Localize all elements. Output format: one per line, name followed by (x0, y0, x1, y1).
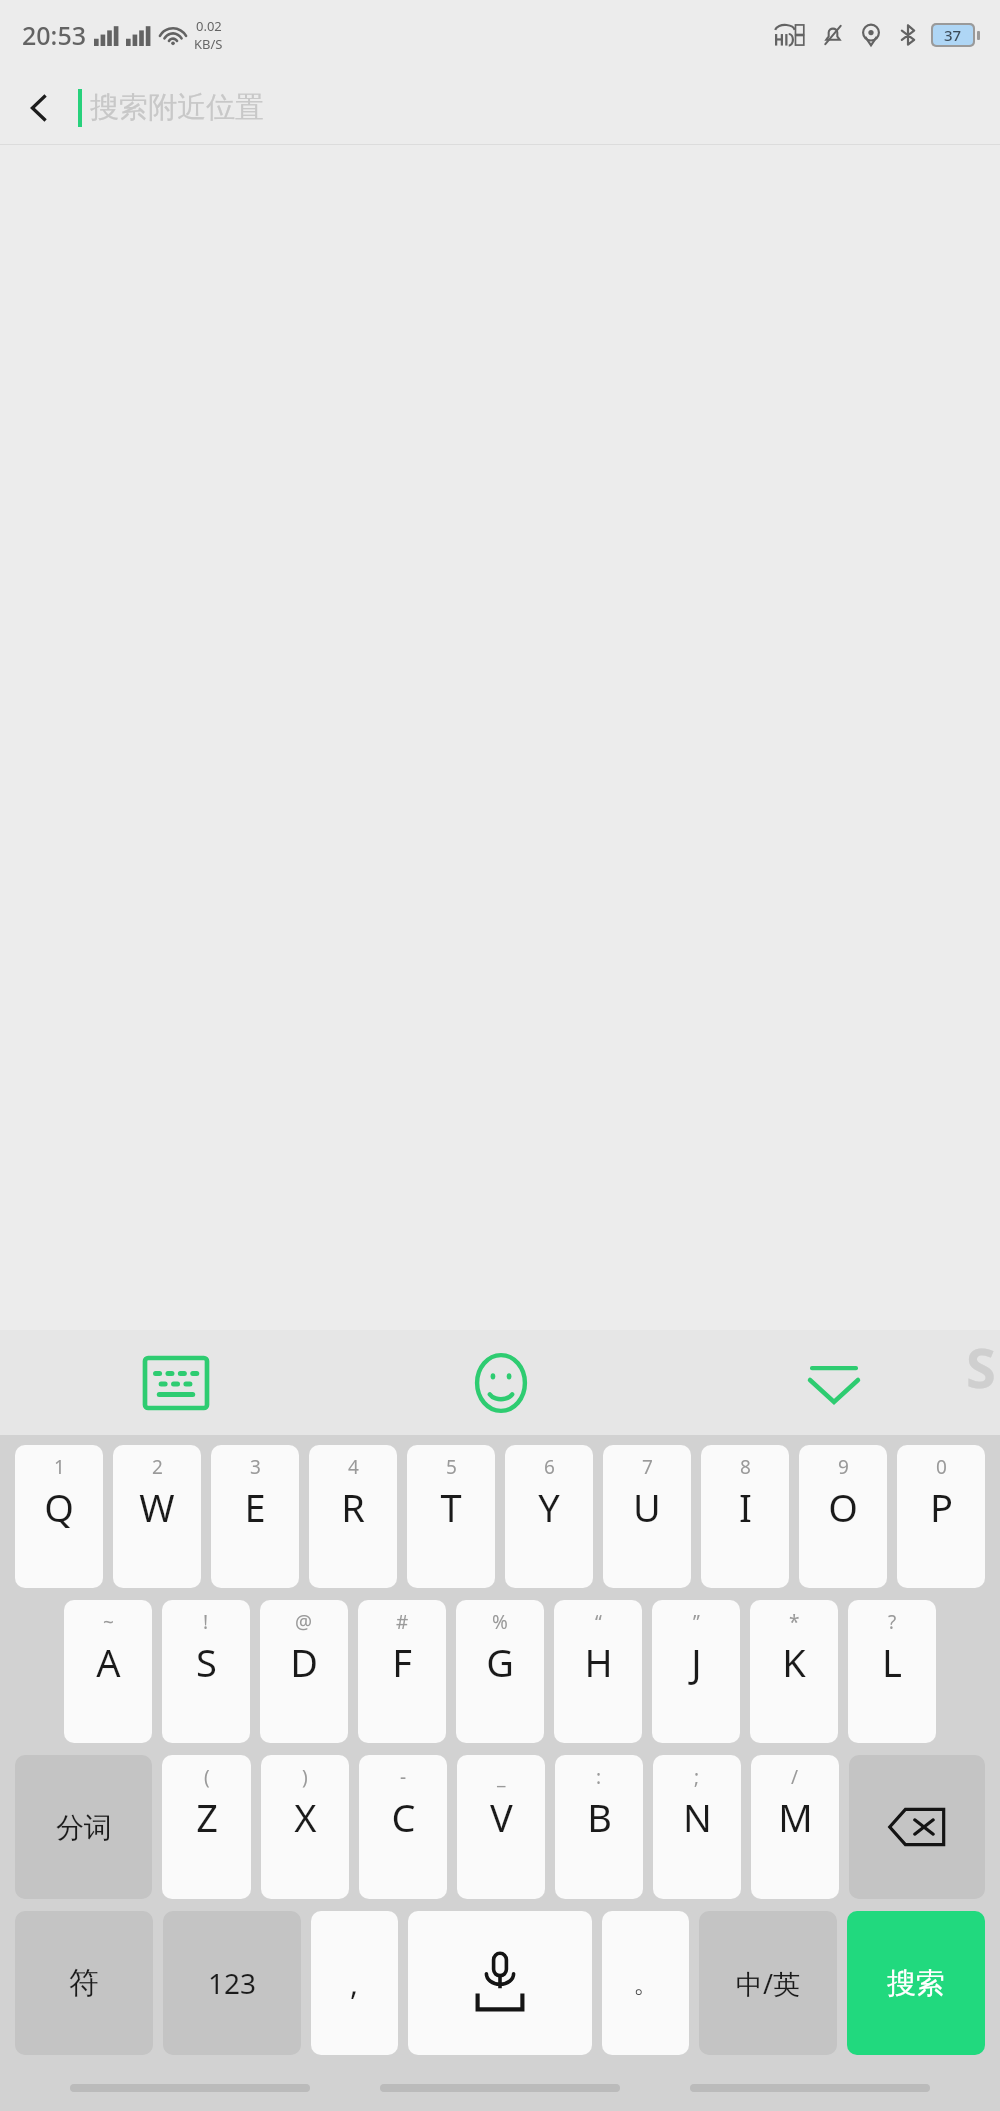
staticText: I (739, 1481, 752, 1533)
button[interactable]: ( (162, 1755, 251, 1899)
staticText: ; (694, 1764, 700, 1790)
staticText: L (882, 1636, 902, 1688)
button[interactable]: ? (848, 1600, 936, 1743)
staticText: 6 (544, 1454, 555, 1480)
staticText: % (492, 1609, 508, 1635)
staticText: S (966, 1330, 996, 1404)
staticText: Q (44, 1481, 74, 1533)
button[interactable]: 123 (163, 1911, 301, 2055)
button[interactable]: Backspace (849, 1755, 985, 1899)
staticText: / (791, 1764, 799, 1790)
button[interactable]: ; (653, 1755, 741, 1899)
button[interactable]: Hide keyboard (667, 1330, 1000, 1435)
button[interactable]: 4 (309, 1445, 397, 1588)
staticText: 3 (250, 1454, 261, 1480)
staticText: F (392, 1636, 412, 1688)
staticText: X (294, 1791, 317, 1843)
staticText: 搜索 (887, 1965, 945, 2002)
staticText: U (633, 1481, 661, 1533)
staticText: B (587, 1791, 612, 1843)
staticText: Y (538, 1481, 560, 1533)
staticText: T (440, 1481, 462, 1533)
staticText: _ (497, 1764, 506, 1790)
staticText: @ (295, 1609, 313, 1635)
button[interactable]: , (311, 1911, 398, 2055)
staticText: J (691, 1636, 702, 1688)
staticText: R (341, 1481, 365, 1533)
button[interactable]: 搜索 (847, 1911, 985, 2055)
staticText: 中/英 (736, 1965, 801, 2002)
button[interactable]: 1 (15, 1445, 103, 1588)
button[interactable]: # (358, 1600, 446, 1743)
staticText: V (490, 1791, 513, 1843)
staticText: P (930, 1481, 953, 1533)
staticText: 37 (944, 25, 962, 45)
staticText: 符 (69, 1964, 99, 2002)
button[interactable]: @ (260, 1600, 348, 1743)
staticText: , (350, 1963, 359, 2004)
staticText: Z (196, 1791, 218, 1843)
button[interactable]: % (456, 1600, 544, 1743)
staticText: E (244, 1481, 266, 1533)
button[interactable]: 0 (897, 1445, 985, 1588)
staticText: 20:53 (22, 18, 87, 52)
button[interactable]: 搜索附近位置 (90, 70, 1000, 145)
staticText: 分词 (56, 1810, 112, 1845)
staticText: O (828, 1481, 858, 1533)
staticText: 。 (633, 1967, 659, 2000)
button[interactable]: 9 (799, 1445, 887, 1588)
staticText: “ (595, 1609, 602, 1635)
button[interactable]: ~ (64, 1600, 152, 1743)
button[interactable]: 分词 (15, 1755, 152, 1899)
button[interactable]: 2 (113, 1445, 201, 1588)
staticText: ” (693, 1609, 700, 1635)
button[interactable]: ) (261, 1755, 349, 1899)
staticText: N (683, 1791, 712, 1843)
staticText: : (596, 1764, 602, 1790)
button[interactable]: / (751, 1755, 839, 1899)
button[interactable]: 8 (701, 1445, 789, 1588)
staticText: D (290, 1636, 318, 1688)
staticText: ) (302, 1764, 308, 1790)
button[interactable]: ” (652, 1600, 740, 1743)
staticText: 4 (348, 1454, 359, 1480)
staticText: M (778, 1791, 813, 1843)
staticText: ! (203, 1609, 209, 1635)
staticText: K (782, 1636, 806, 1688)
staticText: A (96, 1636, 121, 1688)
button[interactable]: 6 (505, 1445, 593, 1588)
staticText: 123 (208, 1964, 257, 2002)
button[interactable]: 。 (602, 1911, 689, 2055)
button[interactable]: ! (162, 1600, 250, 1743)
staticText: * (789, 1609, 800, 1635)
button[interactable]: 符 (15, 1911, 153, 2055)
button[interactable]: * (750, 1600, 838, 1743)
staticText: S (196, 1636, 217, 1688)
staticText: H (584, 1636, 613, 1688)
button[interactable]: : (555, 1755, 643, 1899)
staticText: W (139, 1481, 175, 1533)
staticText: ? (888, 1609, 897, 1635)
button[interactable]: 3 (211, 1445, 299, 1588)
button[interactable]: 5 (407, 1445, 495, 1588)
button[interactable]: Space and voice input (408, 1911, 592, 2055)
staticText: 1 (54, 1454, 65, 1480)
button[interactable]: 7 (603, 1445, 691, 1588)
other: Backspace (888, 1806, 946, 1848)
button[interactable]: “ (554, 1600, 642, 1743)
staticText: 7 (642, 1454, 653, 1480)
staticText: 搜索附近位置 (90, 89, 264, 126)
staticText: 8 (740, 1454, 751, 1480)
button[interactable]: - (359, 1755, 447, 1899)
button[interactable]: _ (457, 1755, 545, 1899)
staticText: G (486, 1636, 514, 1688)
button[interactable]: Emoji (334, 1330, 667, 1435)
button[interactable]: Back (0, 70, 78, 145)
staticText: KB/S (194, 35, 223, 53)
staticText: C (391, 1791, 416, 1843)
button[interactable]: Keyboard layout (0, 1330, 334, 1435)
button[interactable]: 中/英 (699, 1911, 837, 2055)
